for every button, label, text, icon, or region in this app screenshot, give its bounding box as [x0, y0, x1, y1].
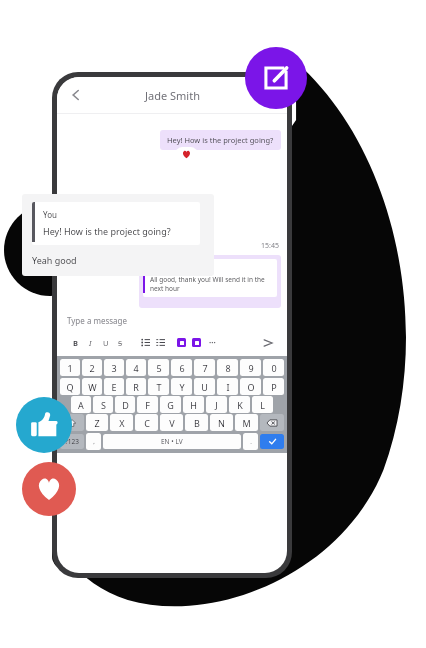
button[interactable]: Jade Smith: [139, 255, 281, 308]
button[interactable]: Q: [60, 378, 80, 395]
staticText: B: [73, 338, 78, 348]
staticText: You: [43, 209, 57, 220]
button[interactable]: K: [229, 396, 250, 413]
button[interactable]: 2: [82, 359, 102, 376]
staticText: I: [89, 338, 92, 348]
button[interactable]: U: [194, 378, 215, 395]
button[interactable]: U: [98, 335, 113, 350]
button[interactable]: 3: [104, 359, 124, 376]
button[interactable]: Back: [63, 82, 89, 108]
button[interactable]: H: [183, 396, 204, 413]
button[interactable]: Send: [259, 334, 277, 352]
button[interactable]: ?123: [60, 434, 84, 449]
button[interactable]: 1: [60, 359, 80, 376]
staticText: B: [194, 417, 200, 429]
staticText: K: [237, 399, 243, 411]
button[interactable]: Like: [16, 397, 72, 453]
button[interactable]: B: [68, 335, 83, 350]
button[interactable]: J: [206, 396, 227, 413]
button[interactable]: More options: [204, 335, 220, 351]
staticText: R: [133, 381, 139, 393]
button[interactable]: I: [83, 335, 98, 350]
button[interactable]: .: [243, 433, 258, 450]
button[interactable]: P: [263, 378, 284, 395]
staticText: 4: [133, 362, 139, 374]
staticText: C: [144, 417, 150, 429]
staticText: H: [190, 399, 197, 411]
button[interactable]: 9: [240, 359, 261, 376]
staticText: 8: [225, 362, 231, 374]
button[interactable]: 7: [194, 359, 215, 376]
button[interactable]: You: [22, 194, 214, 276]
button[interactable]: Insert video: [189, 335, 204, 350]
staticText: Jade Smith: [145, 88, 200, 103]
button[interactable]: ,: [86, 433, 101, 450]
staticText: 5: [156, 362, 162, 374]
button[interactable]: O: [240, 378, 261, 395]
button[interactable]: Enter: [260, 434, 284, 449]
staticText: 2: [89, 362, 95, 374]
button[interactable]: EN • LV: [103, 434, 241, 449]
button[interactable]: D: [115, 396, 135, 413]
button[interactable]: Bulleted list: [138, 335, 153, 350]
button[interactable]: N: [210, 414, 233, 431]
staticText: P: [271, 381, 277, 393]
staticText: Type a message: [67, 315, 128, 326]
button[interactable]: X: [110, 414, 133, 431]
button[interactable]: E: [104, 378, 124, 395]
staticText: 15:45: [261, 241, 279, 251]
button[interactable]: Z: [86, 414, 108, 431]
button[interactable]: Love: [22, 462, 76, 516]
staticText: S: [101, 399, 106, 411]
staticText: Z: [94, 417, 100, 429]
button[interactable]: 5: [148, 359, 169, 376]
button[interactable]: A: [71, 396, 91, 413]
button[interactable]: Hey! How is the project going?: [160, 130, 281, 150]
button[interactable]: Y: [171, 378, 192, 395]
button[interactable]: Compose new message: [245, 47, 307, 109]
button[interactable]: F: [137, 396, 158, 413]
staticText: ?123: [65, 437, 79, 446]
button[interactable]: G: [160, 396, 181, 413]
button[interactable]: Numbered list: [153, 335, 168, 350]
staticText: G: [167, 399, 174, 411]
button[interactable]: 6: [171, 359, 192, 376]
button[interactable]: V: [160, 414, 183, 431]
staticText: D: [122, 399, 129, 411]
button[interactable]: Insert image: [174, 335, 189, 350]
button[interactable]: S: [113, 335, 128, 350]
button[interactable]: 4: [126, 359, 146, 376]
staticText: Q: [66, 381, 74, 393]
staticText: L: [260, 399, 265, 411]
button[interactable]: I: [217, 378, 238, 395]
staticText: 7: [202, 362, 208, 374]
staticText: U: [201, 381, 208, 393]
button[interactable]: T: [148, 378, 169, 395]
button[interactable]: W: [82, 378, 102, 395]
staticText: 0: [271, 362, 277, 374]
button[interactable]: Backspace: [260, 414, 284, 431]
staticText: S: [118, 338, 123, 348]
button[interactable]: 0: [263, 359, 284, 376]
staticText: 9: [248, 362, 254, 374]
staticText: .: [250, 438, 252, 446]
button[interactable]: L: [252, 396, 273, 413]
button[interactable]: B: [185, 414, 208, 431]
button[interactable]: C: [135, 414, 158, 431]
staticText: V: [169, 417, 175, 429]
staticText: I: [226, 381, 230, 393]
button[interactable]: M: [235, 414, 258, 431]
staticText: EN • LV: [161, 437, 183, 446]
button[interactable]: Heart reaction: [175, 147, 198, 162]
staticText: 1: [67, 362, 73, 374]
button[interactable]: 8: [217, 359, 238, 376]
staticText: X: [119, 417, 125, 429]
staticText: 3: [111, 362, 117, 374]
staticText: O: [247, 381, 255, 393]
staticText: Hey! How is the project going?: [43, 225, 171, 237]
button[interactable]: Shift: [60, 414, 84, 431]
button[interactable]: R: [126, 378, 146, 395]
button[interactable]: S: [93, 396, 113, 413]
